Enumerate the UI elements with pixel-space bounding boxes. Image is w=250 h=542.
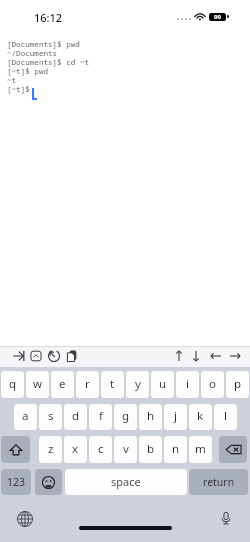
button[interactable]: a	[14, 404, 37, 430]
staticText: o	[209, 376, 216, 392]
staticText: g	[122, 408, 130, 424]
button[interactable]: Shift	[1, 436, 30, 463]
button[interactable]: k	[189, 404, 212, 430]
staticText: return	[203, 475, 235, 489]
button[interactable]: m	[189, 436, 212, 463]
staticText: s	[48, 408, 54, 424]
staticText: w	[33, 376, 43, 392]
staticText: 90	[214, 13, 221, 21]
staticText: p	[234, 376, 242, 392]
button[interactable]: Emoji	[35, 469, 62, 495]
button[interactable]: e	[51, 371, 74, 398]
button[interactable]: t	[101, 371, 124, 398]
button[interactable]: y	[126, 371, 149, 398]
button[interactable]: z	[39, 436, 62, 463]
staticText: x	[72, 441, 79, 457]
button[interactable]: Arrow down	[190, 350, 202, 362]
button[interactable]: Backspace	[219, 436, 247, 463]
button[interactable]: 123	[1, 469, 31, 495]
button[interactable]: c	[89, 436, 112, 463]
staticText: [Documents]$ pwd ~/Documents [Documents]…	[7, 39, 90, 94]
button[interactable]: n	[164, 436, 187, 463]
button[interactable]: d	[64, 404, 87, 430]
staticText: b	[147, 441, 155, 457]
staticText: t	[110, 376, 115, 392]
button[interactable]: j	[164, 404, 187, 430]
button[interactable]: h	[139, 404, 162, 430]
button[interactable]: Paste	[66, 350, 78, 362]
button[interactable]: o	[201, 371, 224, 398]
button[interactable]: Arrow left	[210, 350, 222, 362]
button[interactable]: s	[39, 404, 62, 430]
button[interactable]: x	[64, 436, 87, 463]
button[interactable]: Arrow up	[173, 350, 185, 362]
staticText: e	[59, 376, 66, 392]
staticText: q	[9, 376, 17, 392]
staticText: y	[135, 376, 141, 392]
button[interactable]: r	[76, 371, 99, 398]
button[interactable]: w	[26, 371, 49, 398]
button[interactable]: b	[139, 436, 162, 463]
staticText: 123	[7, 475, 26, 489]
staticText: n	[172, 441, 180, 457]
staticText: u	[159, 376, 167, 392]
staticText: l	[224, 408, 227, 424]
staticText: 16:12	[34, 10, 63, 25]
button[interactable]: u	[151, 371, 174, 398]
button[interactable]: i	[176, 371, 199, 398]
staticText: m	[195, 441, 206, 457]
button[interactable]: f	[89, 404, 112, 430]
staticText: j	[174, 408, 177, 424]
staticText: v	[123, 441, 129, 457]
button[interactable]: Dictation	[218, 510, 234, 526]
button[interactable]: space	[65, 469, 187, 495]
button[interactable]: Arrow right	[229, 350, 241, 362]
button[interactable]: l	[214, 404, 237, 430]
staticText: r	[85, 376, 90, 392]
staticText: k	[197, 408, 204, 424]
staticText: f	[99, 408, 103, 424]
button[interactable]: Tab	[13, 350, 25, 362]
staticText: d	[72, 408, 80, 424]
button[interactable]: p	[226, 371, 249, 398]
staticText: i	[186, 376, 189, 392]
staticText: a	[22, 408, 29, 424]
staticText: c	[98, 441, 104, 457]
button[interactable]: History	[48, 350, 60, 362]
staticText: h	[147, 408, 155, 424]
button[interactable]: Control	[30, 350, 42, 362]
button[interactable]: g	[114, 404, 137, 430]
button[interactable]: Language	[17, 511, 33, 527]
button[interactable]: q	[1, 371, 24, 398]
button[interactable]: v	[114, 436, 137, 463]
button[interactable]: return	[189, 469, 248, 495]
staticText: z	[48, 441, 54, 457]
staticText: space	[111, 474, 141, 489]
